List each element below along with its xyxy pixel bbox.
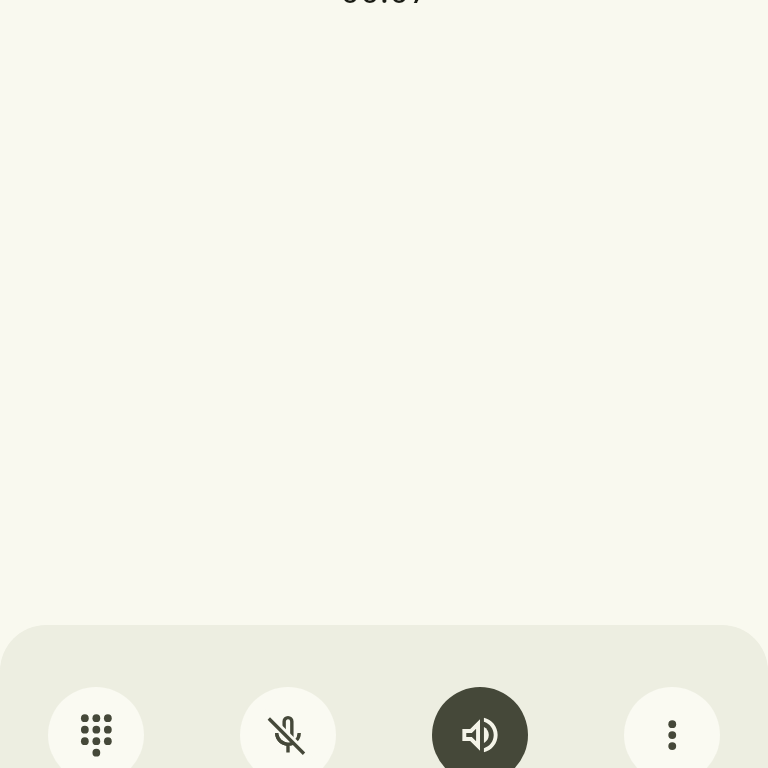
staticText: 00:07 bbox=[340, 0, 429, 13]
button[interactable]: Mute bbox=[240, 687, 336, 768]
button[interactable]: Dialpad bbox=[48, 687, 144, 768]
button[interactable]: Speaker bbox=[432, 687, 528, 768]
button[interactable]: More options bbox=[624, 687, 720, 768]
